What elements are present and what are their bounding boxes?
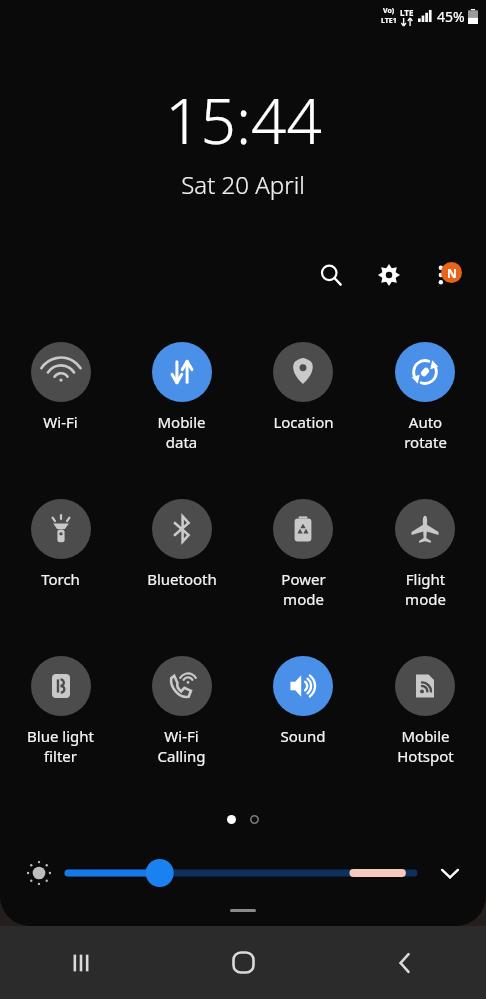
button[interactable]: Location	[242, 335, 364, 492]
button[interactable]: Torch	[0, 492, 121, 649]
staticText: Auto rotate	[404, 412, 447, 452]
staticText: Blue light filter	[27, 726, 94, 766]
button[interactable]: Search	[308, 252, 354, 298]
button[interactable]: Mobile Hotspot	[364, 649, 486, 806]
button[interactable]: Wi-Fi Calling	[121, 649, 242, 806]
button[interactable]: Bluetooth	[121, 492, 242, 649]
staticText: Wi-Fi	[43, 412, 78, 432]
button[interactable]: Back	[324, 926, 486, 999]
staticText: 15:44	[165, 78, 322, 162]
staticText: LTE1	[381, 16, 397, 26]
button[interactable]: More options	[422, 252, 468, 298]
staticText: 45%	[437, 7, 465, 26]
button[interactable]: Wi-Fi	[0, 335, 121, 492]
button[interactable]: Settings	[366, 252, 412, 298]
staticText: Torch	[41, 569, 80, 589]
button[interactable]: Auto rotate	[364, 335, 486, 492]
staticText: Mobile data	[157, 412, 206, 452]
button[interactable]: Home	[162, 926, 324, 999]
button[interactable]: Recent apps	[0, 926, 162, 999]
button[interactable]: Brightness	[68, 853, 414, 893]
staticText: Power mode	[281, 569, 326, 609]
staticText: N	[447, 265, 457, 281]
staticText: Mobile Hotspot	[397, 726, 454, 766]
button[interactable]: Expand brightness settings	[428, 851, 472, 895]
staticText: Wi-Fi Calling	[157, 726, 206, 766]
staticText: Sat 20 April	[181, 168, 305, 201]
button[interactable]: Mobile data	[121, 335, 242, 492]
staticText: Sound	[280, 726, 326, 746]
staticText: Vo)	[383, 6, 395, 16]
button[interactable]: Sound	[242, 649, 364, 806]
button[interactable]: Flight mode	[364, 492, 486, 649]
staticText: Bluetooth	[147, 569, 217, 589]
staticText: Flight mode	[405, 569, 446, 609]
button[interactable]: Power mode	[242, 492, 364, 649]
staticText: Location	[273, 412, 334, 432]
staticText: LTE	[400, 7, 414, 18]
button[interactable]: Blue light filter	[0, 649, 121, 806]
